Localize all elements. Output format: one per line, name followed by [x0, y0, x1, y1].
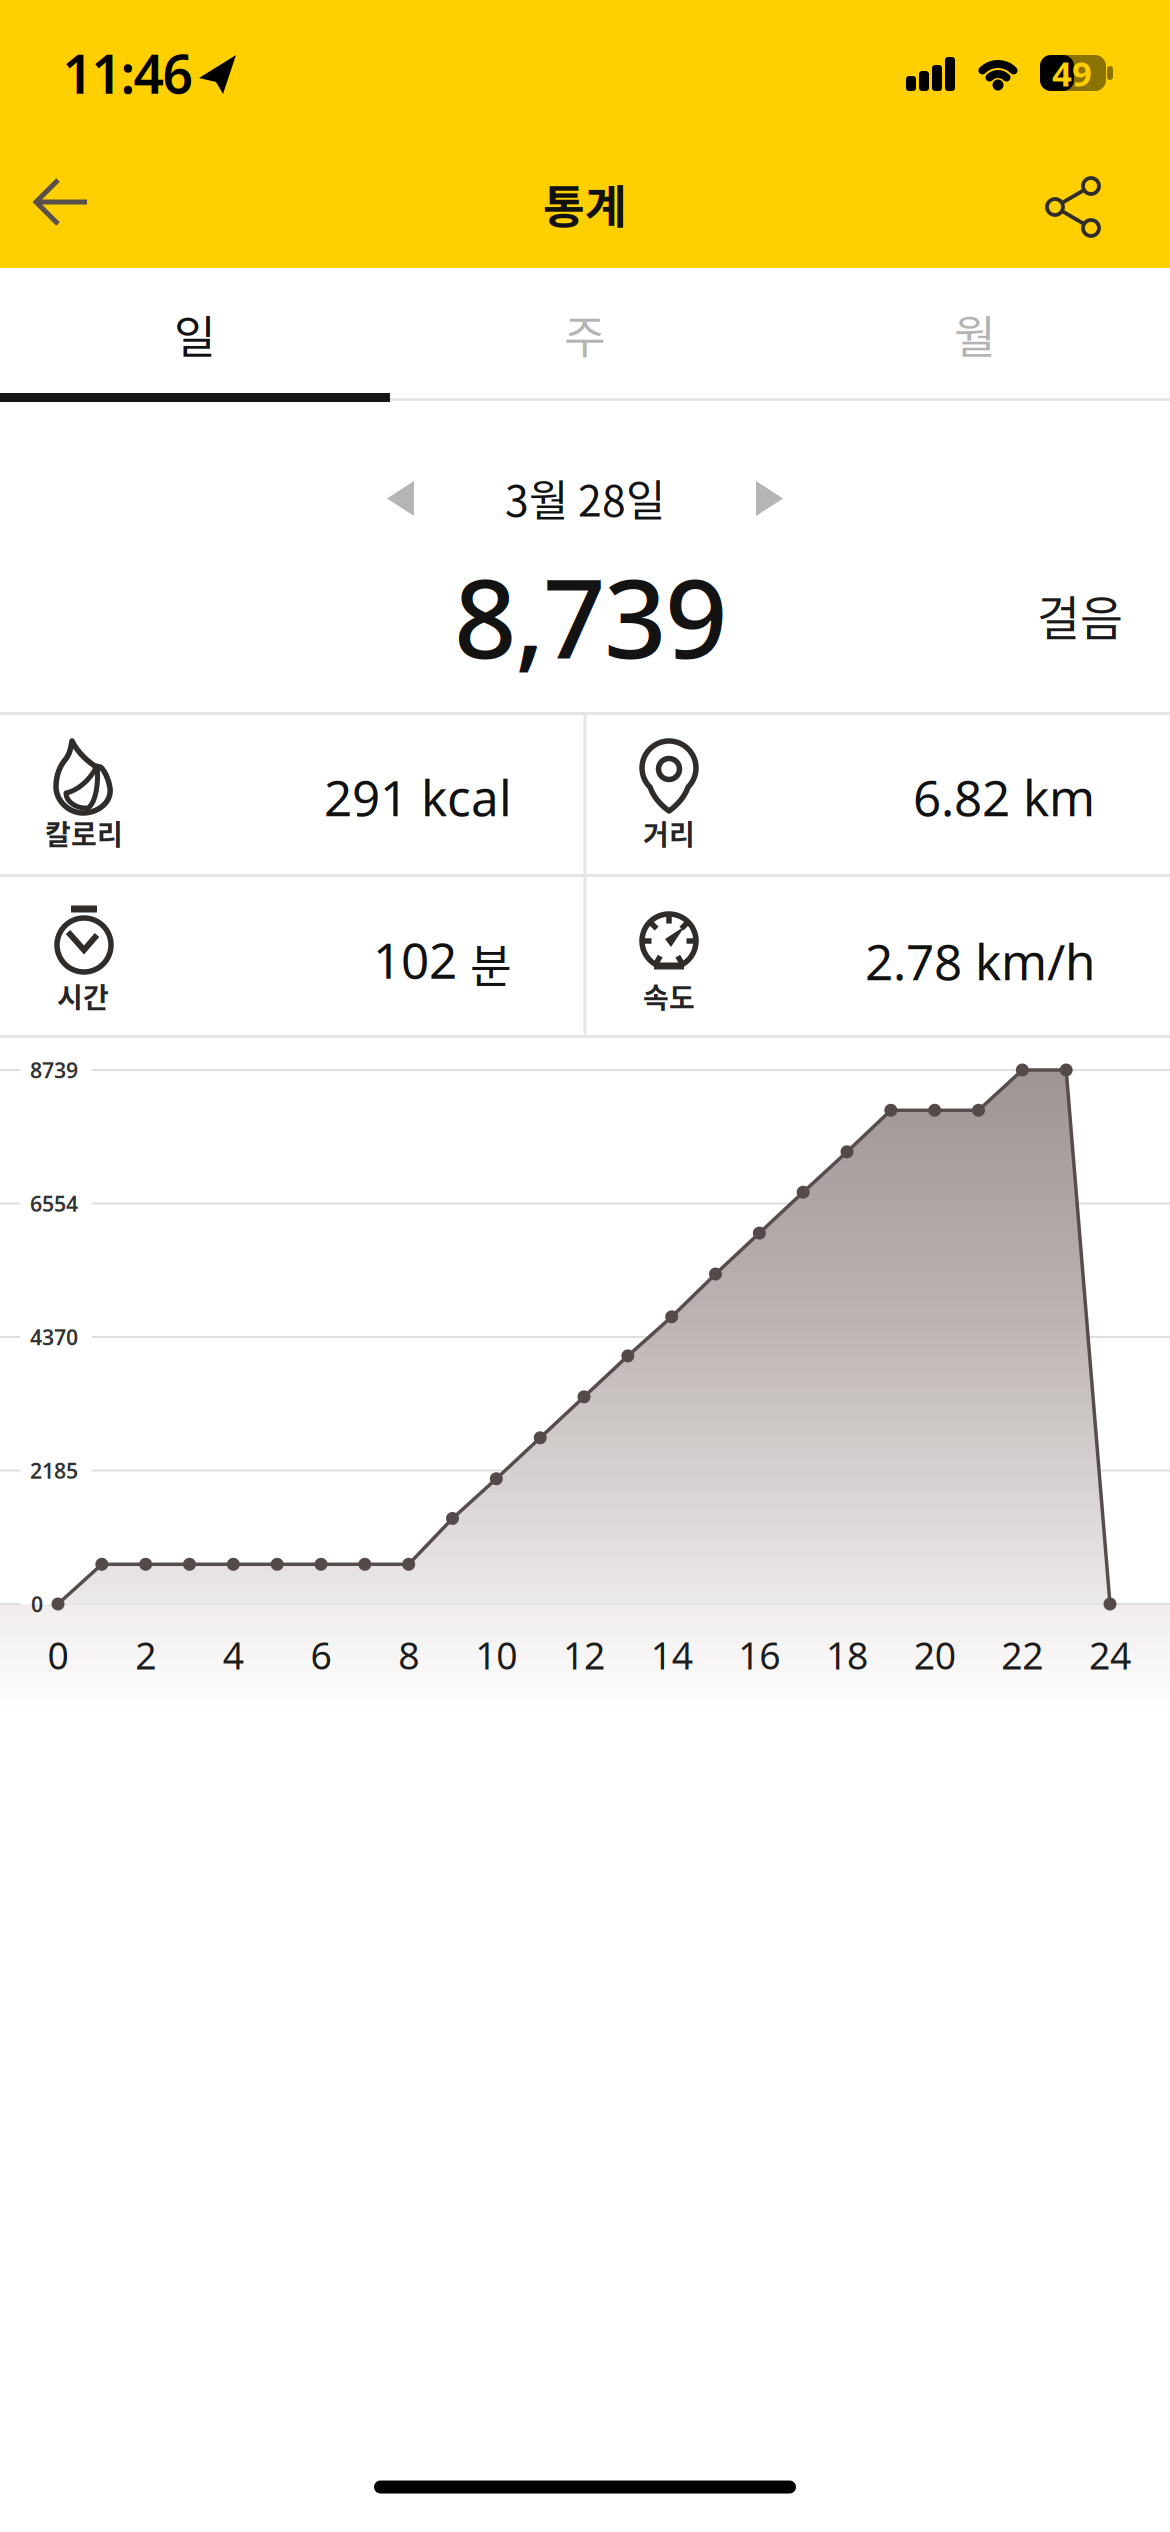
button[interactable]: 다음 날짜	[741, 475, 789, 523]
staticText: 2	[135, 1630, 156, 1680]
staticText: 0	[47, 1630, 68, 1680]
staticText: 16	[738, 1630, 780, 1680]
button[interactable]: 공유	[1038, 172, 1108, 242]
staticText: 6554	[30, 1189, 78, 1218]
button[interactable]: 월	[780, 270, 1170, 398]
staticText: 통계	[543, 171, 627, 237]
button[interactable]: 이전 날짜	[381, 475, 429, 523]
staticText: 11:46	[62, 38, 193, 108]
staticText: 8	[398, 1630, 419, 1680]
staticText: 18	[826, 1630, 868, 1680]
staticText: 0	[31, 1590, 43, 1618]
staticText: 12	[563, 1630, 605, 1680]
staticText: 8739	[30, 1056, 78, 1084]
staticText: 22	[1001, 1630, 1043, 1680]
staticText: 시간	[57, 976, 109, 1016]
button[interactable]: 뒤로	[32, 172, 92, 232]
staticText: 6.82 km	[913, 764, 1095, 830]
staticText: 속도	[643, 976, 695, 1016]
staticText: 8,739	[454, 543, 728, 689]
staticText: 291 kcal	[324, 764, 512, 830]
button[interactable]: 일	[0, 270, 390, 398]
staticText: 10	[475, 1630, 517, 1680]
staticText: 월	[954, 301, 996, 367]
staticText: 20	[914, 1630, 956, 1680]
staticText: 4370	[30, 1323, 78, 1351]
staticText: 2.78 km/h	[865, 928, 1095, 994]
staticText: 4	[223, 1630, 244, 1680]
staticText: 14	[651, 1630, 693, 1680]
staticText: 주	[564, 301, 606, 367]
staticText: 24	[1089, 1630, 1131, 1680]
staticText: 걸음	[1037, 581, 1123, 649]
staticText: 거리	[643, 813, 695, 853]
button[interactable]: 주	[390, 270, 780, 398]
staticText: 칼로리	[45, 813, 123, 853]
staticText: 2185	[30, 1456, 78, 1485]
staticText: 49	[1052, 50, 1092, 96]
staticText: 102 분	[373, 927, 512, 995]
staticText: 일	[174, 301, 216, 367]
staticText: 6	[310, 1630, 331, 1680]
staticText: 3월 28일	[505, 467, 665, 529]
